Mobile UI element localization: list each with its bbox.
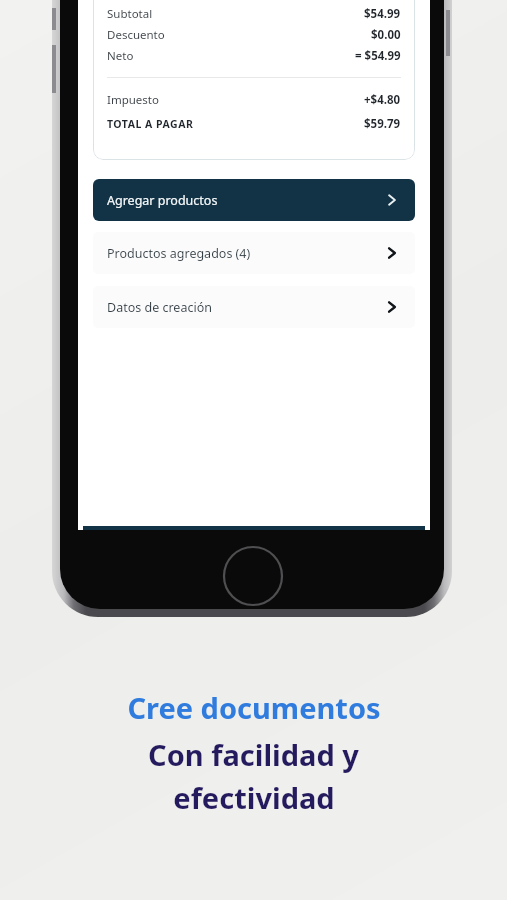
staticText: efectividad — [173, 778, 335, 817]
staticText: = $54.99 — [355, 48, 401, 64]
staticText: TOTAL A PAGAR — [107, 117, 194, 131]
button[interactable]: Agregar productos — [93, 179, 415, 221]
staticText: $59.79 — [364, 116, 401, 132]
staticText: Subtotal — [107, 6, 153, 22]
staticText: Impuesto — [107, 92, 159, 108]
staticText: $54.99 — [364, 6, 401, 22]
staticText: Productos agregados (4) — [107, 245, 251, 262]
staticText: Agregar productos — [107, 192, 218, 209]
staticText: $0.00 — [371, 27, 401, 43]
button[interactable]: Productos agregados (4) — [93, 232, 415, 274]
staticText: Cree documentos — [127, 688, 381, 727]
staticText: Con facilidad y — [148, 735, 359, 774]
button[interactable]: Datos de creación — [93, 286, 415, 328]
staticText: Neto — [107, 48, 134, 64]
staticText: Datos de creación — [107, 299, 212, 316]
staticText: Descuento — [107, 27, 165, 43]
staticText: +$4.80 — [364, 92, 401, 108]
